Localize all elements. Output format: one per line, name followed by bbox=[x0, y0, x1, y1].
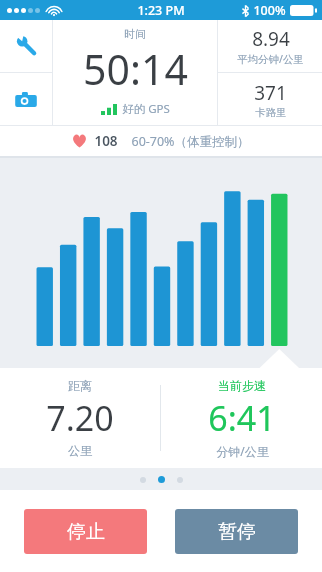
button[interactable]: 8.94 bbox=[218, 20, 322, 72]
button[interactable]: 暂停 bbox=[175, 509, 298, 554]
staticText: 卡路里 bbox=[255, 106, 287, 119]
button[interactable]: 当前步速 bbox=[161, 368, 322, 468]
staticText: 7.20 bbox=[46, 395, 114, 441]
staticText: 当前步速 bbox=[218, 378, 266, 393]
button[interactable]: 距离 bbox=[0, 368, 160, 468]
staticText: 距离 bbox=[68, 378, 92, 393]
staticText: 100% bbox=[253, 2, 286, 19]
staticText: 108 bbox=[94, 132, 118, 150]
button[interactable]: Camera bbox=[0, 73, 52, 126]
staticText: 时间 bbox=[124, 27, 146, 41]
button[interactable]: 108 bbox=[0, 126, 322, 156]
staticText: 60-70%（体重控制） bbox=[131, 133, 250, 150]
staticText: 分钟/公里 bbox=[216, 443, 269, 459]
staticText: 停止 bbox=[67, 520, 105, 544]
staticText: 好的 GPS bbox=[122, 101, 170, 117]
button[interactable]: Settings bbox=[0, 20, 52, 72]
staticText: 6:41 bbox=[208, 395, 276, 441]
button[interactable]: 时间 bbox=[53, 20, 217, 126]
staticText: 平均分钟/公里 bbox=[237, 52, 304, 66]
button[interactable]: 371 bbox=[218, 73, 322, 126]
button[interactable]: 停止 bbox=[24, 509, 147, 554]
staticText: 8.94 bbox=[252, 26, 290, 52]
staticText: 暂停 bbox=[218, 520, 256, 544]
button[interactable] bbox=[0, 156, 322, 368]
staticText: 公里 bbox=[68, 443, 92, 458]
staticText: 371 bbox=[254, 80, 287, 106]
staticText: 50:14 bbox=[83, 41, 188, 97]
staticText: 1:23 PM bbox=[137, 2, 185, 19]
